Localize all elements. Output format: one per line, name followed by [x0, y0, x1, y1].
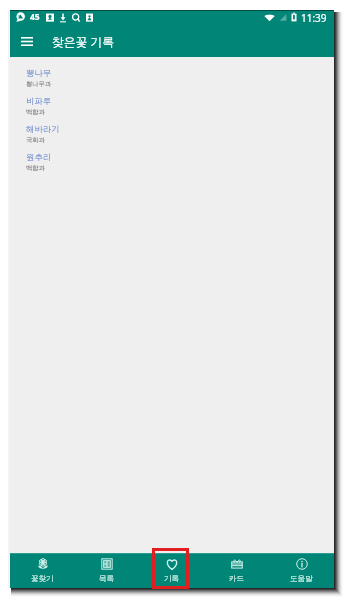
staticText: 뽕나무과 [26, 80, 52, 88]
button[interactable]: 꽃찾기 [10, 553, 74, 588]
staticText: 찾은꽃 기록 [52, 33, 115, 49]
staticText: 원추리 [26, 152, 52, 163]
button[interactable]: 비파루 [10, 92, 334, 120]
staticText: 국화과 [26, 136, 45, 144]
staticText: 백합과 [26, 164, 45, 172]
staticText: 뽕나무 [26, 68, 52, 79]
button[interactable]: 목록 [74, 553, 139, 588]
button[interactable]: 도움말 [269, 553, 334, 588]
staticText: 11:39 [301, 11, 327, 23]
staticText: 비파루 [26, 96, 52, 107]
staticText: 백합과 [26, 108, 45, 116]
button[interactable]: 해바라기 [10, 120, 334, 148]
button[interactable]: 카드 [204, 553, 269, 588]
button[interactable]: 뽕나무 [10, 64, 334, 92]
staticText: 꽃찾기 [31, 574, 54, 583]
staticText: 해바라기 [26, 124, 60, 135]
staticText: 기록 [164, 574, 179, 583]
staticText: 도움말 [290, 574, 313, 583]
button[interactable]: Open navigation menu [10, 24, 44, 58]
staticText: 목록 [99, 574, 114, 583]
button[interactable]: 원추리 [10, 148, 334, 176]
staticText: 카드 [229, 574, 244, 583]
button[interactable]: 기록 [139, 553, 204, 588]
staticText: 45 [30, 11, 40, 23]
